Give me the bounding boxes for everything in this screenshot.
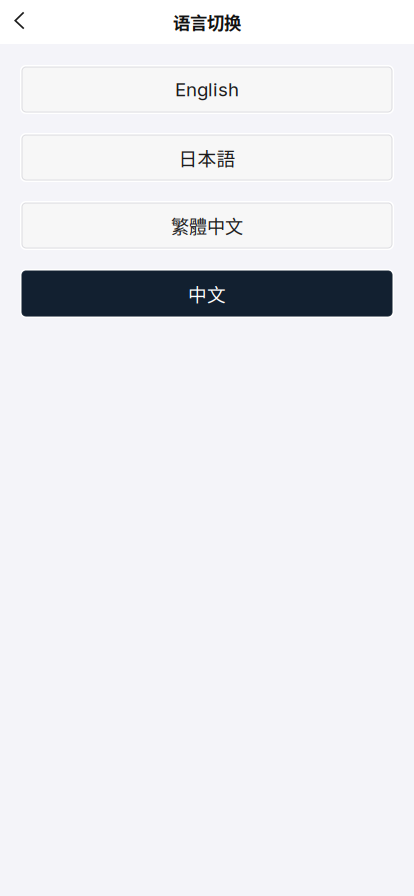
button[interactable]: 日本語 [20,133,394,182]
staticText: 日本語 [178,144,235,171]
staticText: 中文 [188,280,226,307]
button[interactable]: English [20,65,394,114]
staticText: 语言切换 [173,9,241,35]
staticText: English [175,78,239,101]
button[interactable]: Back [0,0,39,44]
button[interactable]: 繁體中文 [20,201,394,250]
button[interactable]: 中文 [20,269,394,318]
staticText: 繁體中文 [171,212,243,239]
